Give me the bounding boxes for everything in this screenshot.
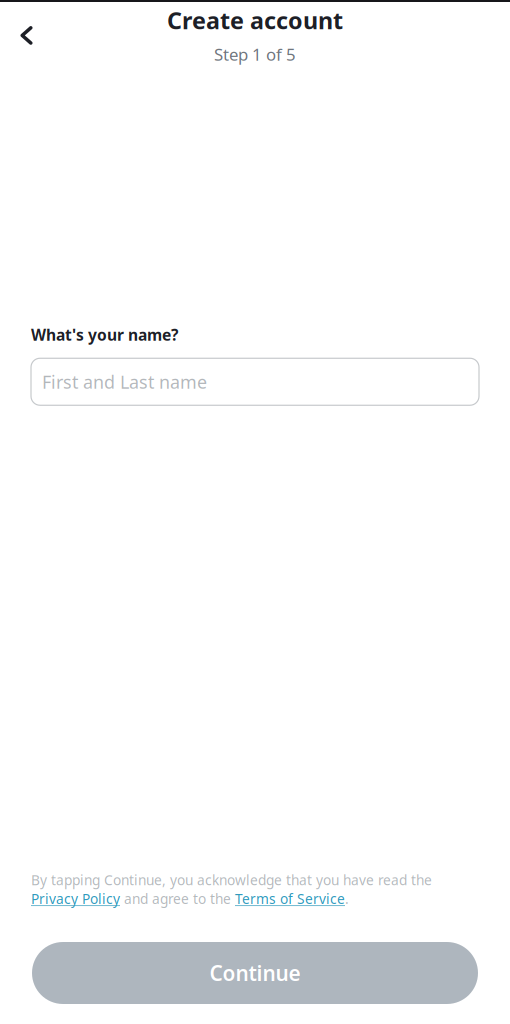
staticText: What's your name? — [31, 324, 178, 345]
staticText: Step 1 of 5 — [214, 43, 296, 66]
staticText: By tapping Continue, you acknowledge tha… — [31, 871, 432, 889]
staticText: Terms of Service — [235, 889, 345, 908]
staticText: First and Last name — [42, 370, 207, 394]
button[interactable]: Back — [5, 15, 49, 55]
button[interactable]: Continue — [32, 942, 478, 1004]
button[interactable]: Terms of Service — [235, 889, 345, 908]
staticText: Continue — [209, 959, 300, 987]
staticText: Create account — [167, 4, 343, 36]
button[interactable]: Privacy Policy — [31, 889, 120, 908]
staticText: . — [345, 889, 349, 908]
staticText: and agree to the — [120, 889, 235, 908]
staticText: Privacy Policy — [31, 889, 120, 908]
button[interactable]: First and Last name — [31, 358, 479, 405]
